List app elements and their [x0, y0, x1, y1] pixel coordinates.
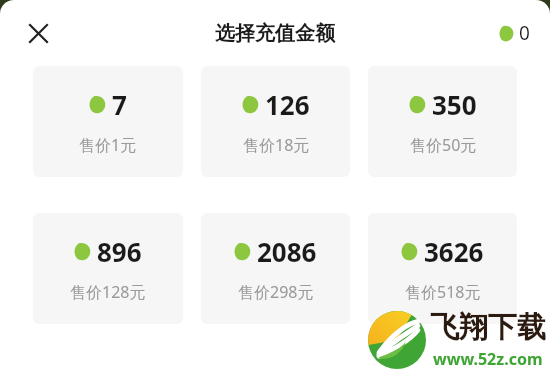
staticText: 售价128元	[70, 281, 146, 303]
staticText: 选择充值金额	[215, 21, 335, 46]
staticText: 售价518元	[405, 281, 481, 303]
staticText: 3626	[424, 234, 484, 269]
button[interactable]: Close	[18, 13, 58, 53]
button[interactable]: 126	[201, 66, 350, 177]
staticText: 350	[432, 87, 477, 122]
button[interactable]: 2086	[201, 213, 350, 324]
button[interactable]: 350	[368, 66, 517, 177]
staticText: www.52z.com	[433, 348, 543, 370]
staticText: 售价18元	[243, 134, 310, 156]
staticText: 售价298元	[238, 281, 314, 303]
button[interactable]: 896	[33, 213, 183, 324]
staticText: 售价50元	[410, 134, 477, 156]
button[interactable]: 3626	[368, 213, 517, 324]
staticText: 0	[519, 20, 530, 46]
button[interactable]: 0	[499, 20, 530, 46]
staticText: 售价1元	[79, 134, 137, 156]
staticText: 7	[112, 87, 127, 122]
staticText: 896	[97, 234, 142, 269]
staticText: 126	[265, 87, 310, 122]
staticText: 2086	[257, 234, 317, 269]
staticText: 飞翔下载	[430, 309, 546, 346]
button[interactable]: 7	[33, 66, 183, 177]
